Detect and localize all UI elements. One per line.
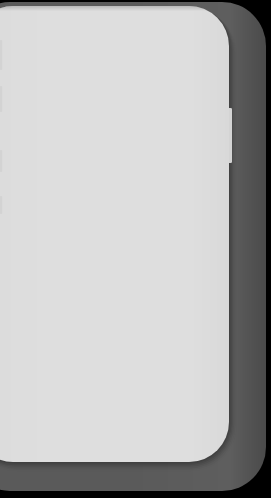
other: Smartphone device illustration: [0, 0, 271, 498]
